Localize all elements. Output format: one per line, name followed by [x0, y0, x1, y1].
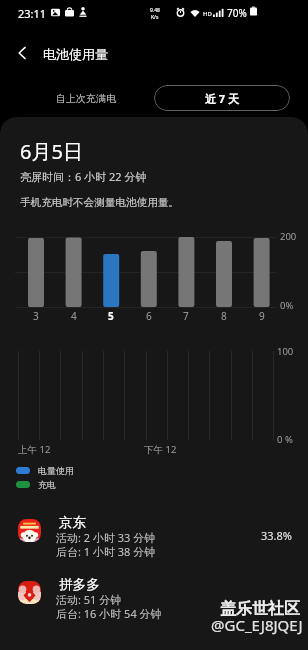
staticText: 近 7 天 — [205, 91, 240, 106]
staticText: 100 — [277, 345, 294, 358]
staticText: 电量使用 — [38, 465, 74, 476]
staticText: 3 — [33, 309, 39, 323]
staticText: 33.8% — [261, 528, 292, 543]
staticText: 充电 — [38, 479, 56, 490]
staticText: 23:11 — [18, 6, 47, 21]
staticText: 自上次充满电 — [56, 92, 116, 105]
staticText: 亮屏时间：6 小时 22 分钟 — [20, 169, 147, 184]
staticText: 9.48 — [150, 7, 160, 14]
staticText: K/s — [151, 14, 159, 21]
staticText: @GC_EJ8JQEJ — [211, 615, 303, 635]
staticText: 京东 — [59, 514, 87, 531]
button[interactable]: Back — [7, 38, 37, 68]
staticText: 4 — [71, 309, 77, 323]
staticText: 200 — [280, 230, 297, 243]
button[interactable]: 近 7 天 — [154, 85, 290, 111]
staticText: 7 — [183, 309, 189, 323]
staticText: 0 % — [277, 433, 293, 446]
button[interactable]: 京东 — [0, 512, 308, 574]
staticText: 盖乐世社区 — [220, 599, 300, 619]
staticText: 8 — [221, 309, 227, 323]
staticText: 70% — [227, 6, 247, 20]
staticText: 后台: 1 小时 38 分钟 — [56, 544, 156, 559]
staticText: HD — [203, 10, 212, 18]
staticText: 后台: 16 小时 54 分钟 — [56, 606, 162, 621]
staticText: 0% — [280, 299, 294, 312]
staticText: 6 — [146, 309, 152, 323]
staticText: 电池使用量 — [43, 46, 108, 62]
staticText: 上午 12 — [18, 443, 51, 456]
staticText: 下午 12 — [144, 443, 177, 456]
staticText: 活动: 2 小时 33 分钟 — [56, 530, 156, 545]
staticText: 5 — [108, 309, 114, 323]
staticText: 9 — [259, 309, 265, 323]
button[interactable]: 拼多多 — [0, 574, 308, 636]
staticText: 拼多多 — [59, 576, 100, 593]
staticText: 6月5日 — [20, 138, 83, 165]
button[interactable]: 自上次充满电 — [18, 85, 154, 111]
staticText: 活动: 51 分钟 — [56, 592, 122, 607]
staticText: 手机充电时不会测量电池使用量。 — [20, 196, 179, 209]
